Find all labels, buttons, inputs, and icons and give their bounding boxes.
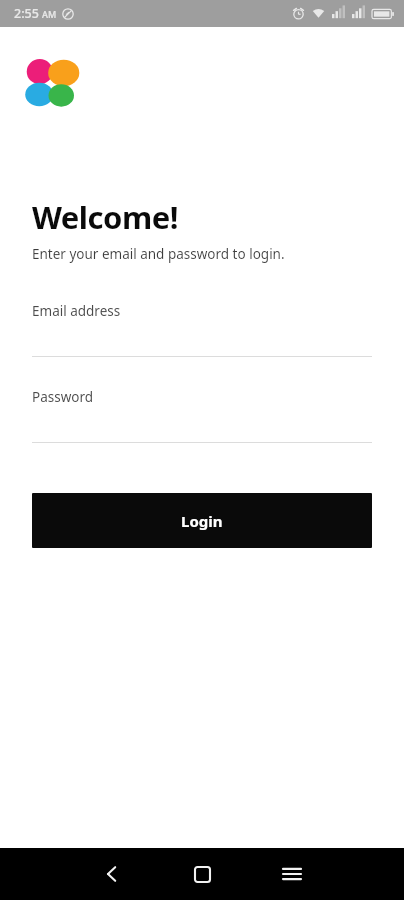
button[interactable]: Recent apps xyxy=(252,848,332,900)
button[interactable]: Home xyxy=(162,848,242,900)
button[interactable]: Email address xyxy=(32,302,372,357)
staticText: Password xyxy=(32,388,94,406)
staticText: Login xyxy=(181,511,223,531)
staticText: AM xyxy=(42,8,57,20)
staticText: Enter your email and password to login. xyxy=(32,245,285,263)
button[interactable]: Login xyxy=(32,493,372,548)
staticText: 2:55 xyxy=(14,5,39,22)
staticText: Email address xyxy=(32,302,121,320)
button[interactable]: Password xyxy=(32,388,372,443)
button[interactable]: Back xyxy=(72,848,152,900)
staticText: Welcome! xyxy=(32,196,178,238)
other: App logo xyxy=(26,60,76,104)
